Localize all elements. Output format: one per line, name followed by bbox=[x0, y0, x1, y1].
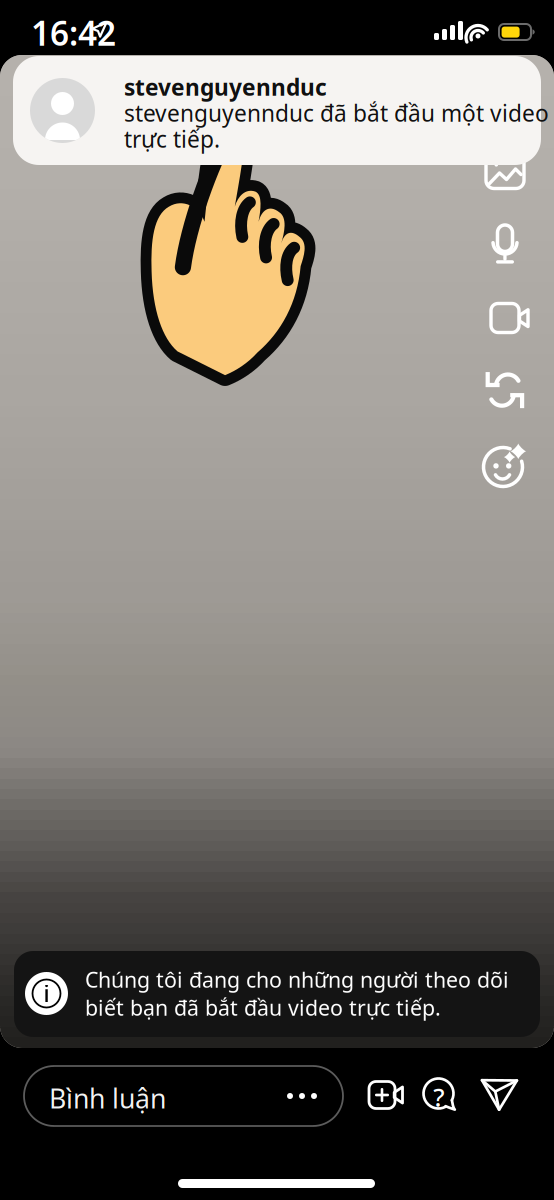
staticText: stevenguyennduc bbox=[124, 72, 327, 102]
staticText: i bbox=[43, 978, 49, 1008]
button[interactable]: Bình luận bbox=[24, 1066, 343, 1126]
staticText: TRỰC TIẾP bbox=[371, 66, 441, 134]
staticText: Bình luận bbox=[49, 1080, 166, 1116]
staticText: Chúng tôi đang cho những người theo dõi bbox=[85, 965, 509, 993]
button[interactable]: Share bbox=[476, 1071, 524, 1119]
button[interactable]: Camera bbox=[477, 290, 533, 346]
button[interactable]: Effects bbox=[477, 438, 533, 494]
button[interactable]: Flip camera bbox=[477, 358, 533, 414]
button[interactable]: Add video bbox=[358, 1071, 406, 1119]
button[interactable]: stevenguyennduc bbox=[13, 56, 541, 165]
staticText: 16:42 bbox=[31, 11, 116, 55]
staticText: biết bạn đã bắt đầu video trực tiếp. bbox=[85, 993, 441, 1021]
staticText: trực tiếp. bbox=[124, 124, 220, 154]
button[interactable]: Microphone bbox=[477, 217, 533, 273]
staticText: stevenguyennduc đã bắt đầu một video bbox=[124, 98, 549, 128]
button[interactable]: Questions bbox=[417, 1071, 465, 1119]
button[interactable]: Close bbox=[483, 76, 529, 122]
staticText: ? bbox=[433, 1080, 444, 1114]
button[interactable]: Media bbox=[477, 144, 533, 200]
